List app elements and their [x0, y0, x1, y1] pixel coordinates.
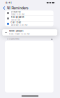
staticText: Today 9:00 AM: [11, 13, 25, 16]
staticText: Renew passport: [9, 30, 24, 32]
staticText: Next Friday 10:30 AM: [9, 33, 30, 35]
staticText: COMPLETED: [7, 38, 20, 41]
button[interactable]: Renew passport: [2, 29, 57, 36]
staticText: Groceries: [11, 10, 21, 13]
button[interactable]: Call Dad: [5, 21, 53, 26]
staticText: Pick up parcel: [11, 16, 25, 18]
staticText: All Reminders: [6, 6, 28, 10]
button[interactable]: Groceries: [5, 10, 53, 16]
staticText: Saturday 2:00 PM: [11, 24, 28, 26]
button[interactable]: Pick up parcel: [5, 16, 53, 21]
button[interactable]: Back: [0, 5, 6, 10]
staticText: Tomorrow: [11, 19, 21, 21]
staticText: Call Dad: [11, 21, 21, 24]
staticText: 9:41: [5, 1, 11, 4]
